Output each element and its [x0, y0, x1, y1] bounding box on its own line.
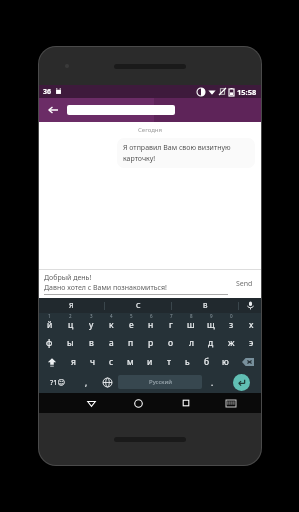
button[interactable]: Добрый день!: [44, 273, 228, 295]
button[interactable]: ю: [216, 352, 235, 371]
button[interactable]: 4: [101, 313, 121, 333]
staticText: м: [127, 356, 134, 368]
button[interactable]: Home: [115, 393, 162, 413]
button[interactable]: Send: [233, 277, 256, 291]
button[interactable]: а: [101, 333, 121, 352]
button[interactable]: 9: [201, 313, 221, 333]
button[interactable]: х: [241, 313, 261, 333]
staticText: В: [203, 301, 208, 311]
staticText: о: [168, 337, 174, 349]
staticText: Сегодня: [39, 126, 261, 134]
staticText: ц: [68, 319, 74, 331]
staticText: 1: [48, 313, 51, 319]
button[interactable]: Enter: [222, 371, 261, 393]
staticText: й: [47, 319, 53, 331]
staticText: г: [169, 319, 173, 331]
button[interactable]: ф: [39, 333, 60, 352]
staticText: я: [71, 356, 76, 368]
staticText: Send: [236, 279, 253, 289]
button[interactable]: р: [141, 333, 161, 352]
staticText: Добрый день!: [44, 273, 92, 283]
staticText: к: [109, 319, 114, 331]
button[interactable]: ы: [60, 333, 81, 352]
button[interactable]: о: [161, 333, 181, 352]
button[interactable]: э: [241, 333, 261, 352]
staticText: у: [89, 319, 94, 331]
staticText: 9: [210, 313, 213, 319]
button[interactable]: Voice input: [239, 298, 261, 313]
staticText: ю: [222, 356, 229, 368]
button[interactable]: Back: [45, 102, 61, 118]
staticText: ч: [90, 356, 96, 368]
button[interactable]: Backspace: [235, 352, 261, 371]
button[interactable]: т: [159, 352, 178, 371]
staticText: з: [229, 319, 234, 331]
staticText: Давно хотел с Вами познакомиться!: [44, 283, 167, 293]
button[interactable]: Я отправил Вам свою визитную карточку!: [117, 138, 255, 168]
staticText: 8: [190, 313, 193, 319]
staticText: 7: [170, 313, 173, 319]
button[interactable]: ,: [76, 371, 96, 393]
staticText: 2: [69, 313, 72, 319]
staticText: э: [249, 337, 254, 349]
staticText: р: [148, 337, 154, 349]
button[interactable]: 1: [39, 313, 60, 333]
button[interactable]: ч: [83, 352, 102, 371]
staticText: ?1☺: [50, 377, 66, 387]
button[interactable]: л: [181, 333, 201, 352]
staticText: п: [128, 337, 134, 349]
staticText: С: [136, 301, 141, 311]
button[interactable]: Contact name: [67, 105, 175, 115]
staticText: 6: [150, 313, 153, 319]
button[interactable]: ж: [221, 333, 241, 352]
staticText: и: [147, 356, 153, 368]
button[interactable]: Recents: [162, 393, 209, 413]
staticText: 4: [110, 313, 113, 319]
staticText: 0: [230, 313, 233, 319]
staticText: 3: [90, 313, 93, 319]
button[interactable]: 6: [141, 313, 161, 333]
button[interactable]: .: [202, 371, 222, 393]
button[interactable]: 2: [60, 313, 81, 333]
staticText: Я: [69, 301, 74, 311]
button[interactable]: Я: [39, 298, 104, 313]
button[interactable]: Hide keyboard: [209, 393, 252, 413]
staticText: 36: [43, 87, 52, 97]
button[interactable]: 5: [121, 313, 141, 333]
staticText: л: [189, 337, 194, 349]
button[interactable]: с: [102, 352, 121, 371]
button[interactable]: д: [201, 333, 221, 352]
staticText: ь: [185, 356, 190, 368]
button[interactable]: 7: [161, 313, 181, 333]
staticText: х: [249, 319, 254, 331]
staticText: .: [211, 377, 214, 388]
staticText: ы: [67, 337, 74, 349]
staticText: Русский: [149, 378, 172, 386]
button[interactable]: С: [105, 298, 171, 313]
button[interactable]: Русский: [118, 375, 202, 389]
staticText: ф: [46, 337, 53, 349]
staticText: ж: [228, 337, 235, 349]
staticText: в: [89, 337, 94, 349]
button[interactable]: Back: [68, 393, 115, 413]
staticText: ш: [187, 319, 195, 331]
button[interactable]: В: [172, 298, 238, 313]
staticText: т: [167, 356, 171, 368]
button[interactable]: ь: [178, 352, 197, 371]
button[interactable]: 3: [81, 313, 101, 333]
button[interactable]: 0: [221, 313, 241, 333]
button[interactable]: п: [121, 333, 141, 352]
button[interactable]: б: [197, 352, 216, 371]
staticText: 5: [130, 313, 133, 319]
button[interactable]: я: [64, 352, 83, 371]
button[interactable]: м: [121, 352, 140, 371]
staticText: б: [204, 356, 210, 368]
staticText: а: [109, 337, 114, 349]
button[interactable]: Shift: [39, 352, 64, 371]
button[interactable]: и: [140, 352, 159, 371]
button[interactable]: ?1☺: [39, 371, 76, 393]
staticText: щ: [207, 319, 215, 331]
button[interactable]: в: [81, 333, 101, 352]
button[interactable]: Change language: [96, 371, 118, 393]
button[interactable]: 8: [181, 313, 201, 333]
